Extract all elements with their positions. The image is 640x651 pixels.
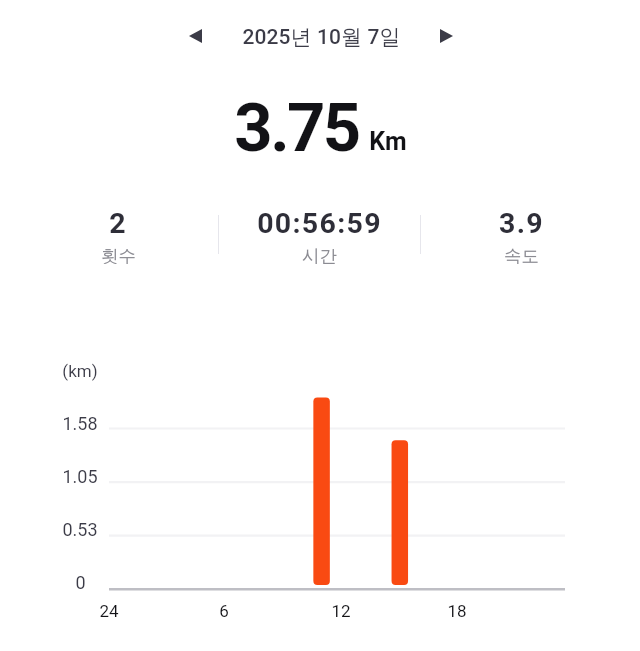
staticText: 24 (99, 601, 119, 621)
staticText: 1.58 (62, 413, 98, 434)
staticText: 1.05 (62, 466, 98, 487)
button[interactable]: 3.9 (421, 207, 622, 279)
button[interactable]: Next day (424, 14, 468, 58)
staticText: 00:56:59 (257, 207, 382, 240)
staticText: 0 (75, 572, 86, 593)
staticText: (km) (62, 361, 98, 381)
staticText: 3.75 (234, 89, 359, 168)
button[interactable]: Previous day (173, 14, 217, 58)
staticText: 0.53 (62, 519, 98, 540)
staticText: 12 (331, 601, 351, 621)
staticText: 횟수 (101, 245, 136, 267)
staticText: 2025년 10월 7일 (242, 24, 401, 50)
staticText: 6 (219, 601, 229, 621)
button[interactable]: 2 (18, 207, 218, 279)
staticText: 18 (447, 601, 467, 621)
staticText: 속도 (504, 245, 539, 267)
staticText: 시간 (302, 245, 337, 267)
staticText: Km (369, 127, 407, 156)
staticText: 2 (109, 207, 127, 240)
button[interactable]: 00:56:59 (219, 207, 420, 279)
staticText: 3.9 (499, 207, 544, 240)
